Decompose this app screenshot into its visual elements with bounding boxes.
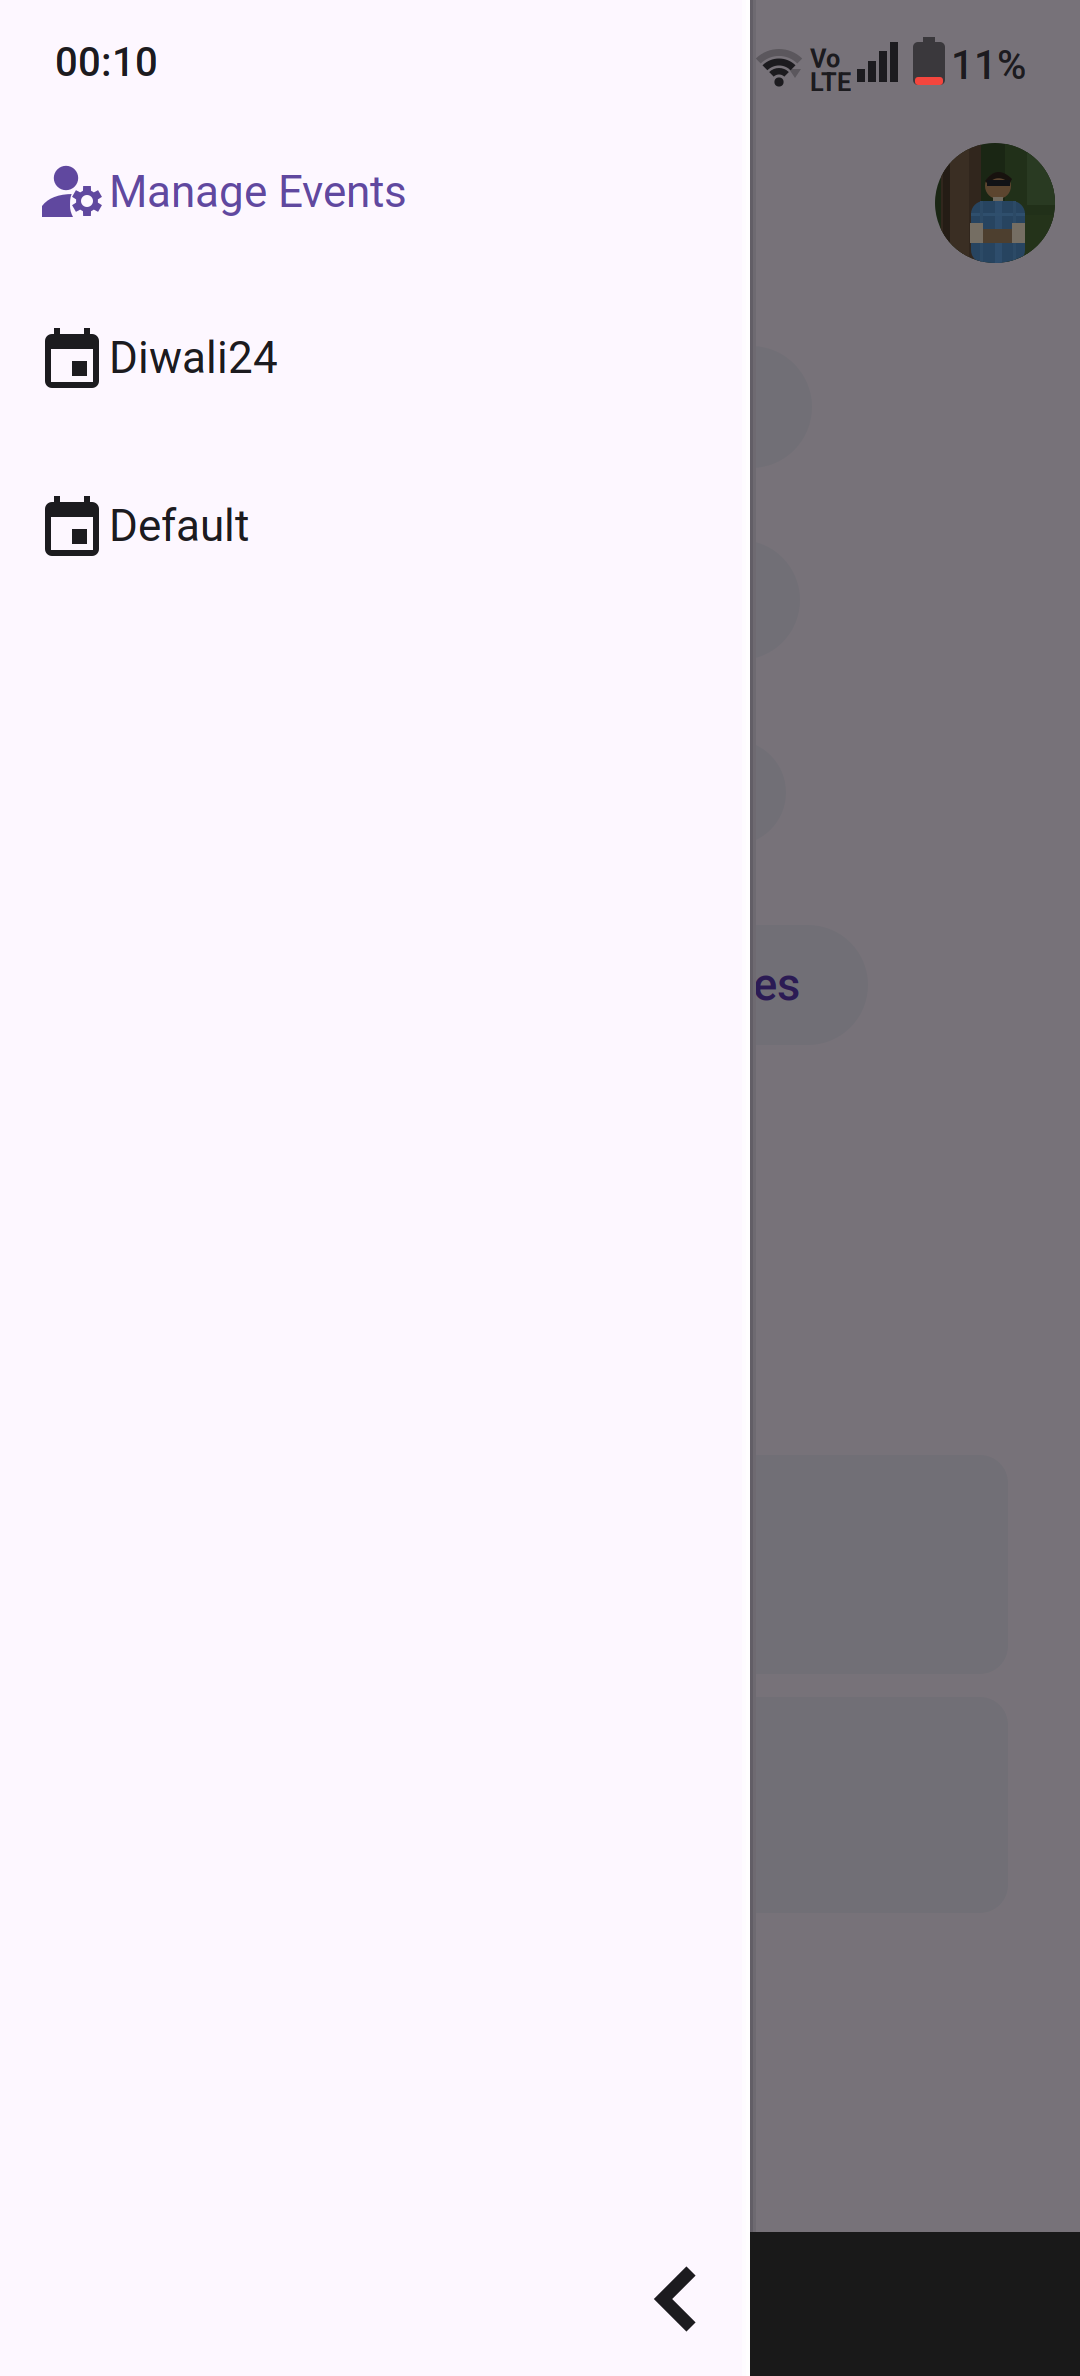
staticText: LTE bbox=[810, 68, 851, 97]
staticText: Diwali24 bbox=[109, 332, 278, 384]
staticText: Manage Events bbox=[109, 166, 407, 218]
button[interactable]: Event bbox=[680, 1697, 1008, 1913]
button[interactable]: Filter bbox=[520, 540, 800, 660]
button[interactable]: Diwali24 bbox=[0, 302, 750, 414]
staticText: Default bbox=[109, 500, 249, 552]
button[interactable]: Profile bbox=[935, 143, 1055, 263]
button[interactable]: Event bbox=[680, 1455, 1008, 1674]
staticText: 00:10 bbox=[55, 39, 158, 86]
button[interactable]: Manage Events bbox=[0, 136, 750, 248]
button[interactable]: Back bbox=[647, 2259, 713, 2341]
button[interactable]: Default bbox=[0, 470, 750, 582]
staticText: es bbox=[753, 958, 800, 1011]
button[interactable]: Filter bbox=[540, 740, 786, 845]
button[interactable]: Filter bbox=[560, 346, 812, 468]
staticText: 11% bbox=[951, 42, 1026, 89]
staticText: Vo bbox=[810, 44, 840, 74]
button[interactable]: es bbox=[600, 925, 868, 1045]
